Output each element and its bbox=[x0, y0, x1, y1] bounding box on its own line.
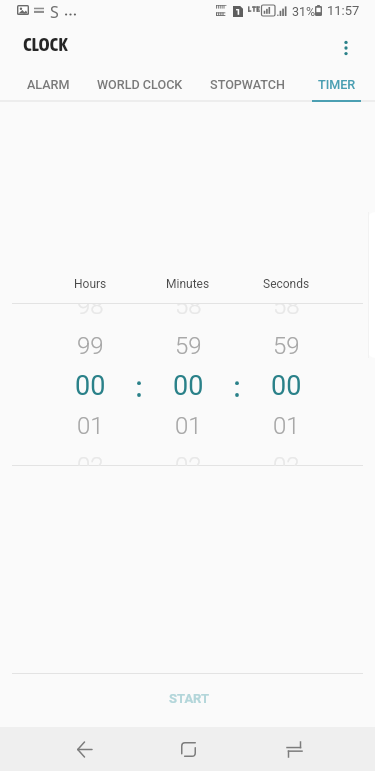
staticText: S bbox=[50, 1, 59, 23]
button[interactable]: 01 bbox=[146, 406, 230, 446]
staticText: 02 bbox=[77, 452, 104, 466]
button[interactable]: 59 bbox=[146, 326, 230, 366]
button[interactable]: 58 bbox=[244, 304, 328, 326]
staticText: CLOCK bbox=[23, 33, 68, 55]
staticText: WORLD CLOCK bbox=[97, 77, 183, 92]
button[interactable]: 01 bbox=[244, 406, 328, 446]
staticText: 01 bbox=[273, 412, 300, 440]
staticText: 01 bbox=[175, 412, 202, 440]
staticText: 58 bbox=[175, 304, 202, 320]
staticText: 02 bbox=[273, 452, 300, 466]
staticText: 59 bbox=[175, 332, 202, 360]
staticText: 00 bbox=[75, 370, 106, 402]
button[interactable]: TIMER bbox=[298, 70, 375, 102]
button[interactable]: 99 bbox=[48, 326, 132, 366]
staticText: TIMER bbox=[318, 77, 356, 92]
button[interactable]: 02 bbox=[48, 446, 132, 466]
button[interactable]: More options bbox=[327, 26, 365, 70]
staticText: ALARM bbox=[27, 77, 70, 92]
staticText: Seconds bbox=[263, 277, 310, 291]
button[interactable]: START bbox=[0, 674, 375, 726]
button[interactable]: 00 bbox=[48, 366, 132, 406]
button[interactable]: Recent apps bbox=[270, 727, 318, 771]
staticText: START bbox=[169, 691, 210, 706]
staticText: 00 bbox=[173, 370, 204, 402]
staticText: Hours bbox=[74, 277, 107, 291]
staticText: 98 bbox=[77, 304, 104, 320]
button[interactable]: 00 bbox=[244, 366, 328, 406]
button[interactable]: 01 bbox=[48, 406, 132, 446]
staticText: 59 bbox=[273, 332, 300, 360]
button[interactable]: 02 bbox=[244, 446, 328, 466]
staticText: 11:57 bbox=[327, 3, 360, 18]
button[interactable]: 59 bbox=[244, 326, 328, 366]
button[interactable]: 00 bbox=[146, 366, 230, 406]
staticText: STOPWATCH bbox=[210, 77, 285, 92]
button[interactable]: 98 bbox=[48, 304, 132, 326]
button[interactable]: 58 bbox=[146, 304, 230, 326]
button[interactable]: Back bbox=[60, 727, 108, 771]
staticText: 01 bbox=[77, 412, 104, 440]
staticText: 58 bbox=[273, 304, 300, 320]
button[interactable]: WORLD CLOCK bbox=[83, 70, 197, 102]
button[interactable]: ALARM bbox=[13, 70, 84, 102]
button[interactable]: Home bbox=[164, 727, 212, 771]
button[interactable]: 02 bbox=[146, 446, 230, 466]
staticText: 99 bbox=[77, 332, 104, 360]
staticText: 31% bbox=[292, 4, 316, 19]
button[interactable]: STOPWATCH bbox=[196, 70, 299, 102]
staticText: 00 bbox=[271, 370, 302, 402]
staticText: 02 bbox=[175, 452, 202, 466]
staticText: Minutes bbox=[166, 277, 210, 291]
